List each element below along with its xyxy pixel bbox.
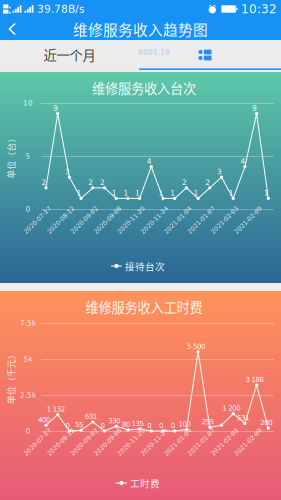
staticText: 0 bbox=[159, 421, 163, 430]
staticText: 1 bbox=[112, 189, 117, 197]
staticText: 80 bbox=[122, 420, 130, 428]
staticText: 2021-01-04 bbox=[160, 438, 196, 445]
staticText: 0 bbox=[25, 427, 30, 435]
staticText: 2021-02-03 bbox=[207, 438, 243, 445]
staticText: 0 bbox=[147, 421, 151, 430]
staticText: 0 bbox=[171, 421, 175, 430]
staticText: 1 bbox=[123, 189, 128, 197]
staticText: 2020-09-02 bbox=[66, 438, 102, 445]
staticText: 255 bbox=[202, 418, 214, 426]
staticText: 2 bbox=[100, 178, 105, 187]
staticText: 4 bbox=[147, 157, 152, 165]
staticText: 近一个月 bbox=[43, 45, 95, 64]
staticText: 2020-08-12 bbox=[43, 216, 79, 223]
staticText: 400 bbox=[38, 416, 50, 424]
staticText: 200 bbox=[260, 419, 272, 427]
staticText: 10 bbox=[23, 99, 33, 107]
staticText: 1 bbox=[135, 189, 140, 197]
staticText: 4 bbox=[240, 157, 245, 165]
staticText: 2021-01-04 bbox=[160, 216, 196, 223]
staticText: 单位（台） bbox=[0, 150, 33, 162]
staticText: 2020-11-20 bbox=[113, 216, 149, 223]
staticText: 1 bbox=[77, 189, 82, 197]
staticText: 531 bbox=[237, 414, 249, 422]
staticText: 2020-11-24 bbox=[136, 216, 172, 223]
staticText: 工时费 bbox=[130, 476, 160, 490]
staticText: 330 bbox=[108, 417, 120, 425]
staticText: 1 bbox=[229, 189, 234, 197]
staticText: 3 186 bbox=[246, 376, 264, 384]
staticText: 1 bbox=[158, 189, 163, 197]
button[interactable]: Switch to table view bbox=[189, 42, 220, 68]
staticText: 55 bbox=[75, 421, 83, 429]
staticText: 10:32 bbox=[241, 2, 277, 16]
staticText: 1 bbox=[194, 189, 199, 197]
staticText: 维修服务收入台次 bbox=[92, 78, 196, 97]
staticText: 2021-02-09 bbox=[230, 438, 266, 445]
staticText: 8001.16 bbox=[138, 48, 170, 56]
staticText: 2020-11-24 bbox=[136, 438, 172, 445]
staticText: 单位（千元） bbox=[0, 371, 38, 383]
button[interactable]: 8001.16 bbox=[132, 42, 176, 62]
button[interactable]: 近一个月 bbox=[30, 38, 108, 71]
staticText: 2021-01-07 bbox=[183, 438, 219, 445]
staticText: 1 bbox=[264, 189, 269, 197]
staticText: 9 bbox=[252, 104, 257, 112]
staticText: 2.5k bbox=[20, 391, 36, 399]
staticText: 3 bbox=[217, 167, 222, 176]
staticText: 2021-02-09 bbox=[230, 216, 266, 223]
staticText: 2021-02-03 bbox=[207, 216, 243, 223]
staticText: 2 bbox=[41, 178, 46, 187]
staticText: 2021-01-07 bbox=[183, 216, 219, 223]
staticText: 5k bbox=[23, 355, 32, 363]
staticText: 1 132 bbox=[47, 405, 65, 413]
staticText: 2020-09-02 bbox=[66, 216, 102, 223]
staticText: 2020-11-20 bbox=[113, 438, 149, 445]
staticText: 接待台次 bbox=[125, 259, 165, 273]
staticText: 1 bbox=[170, 189, 175, 197]
staticText: 5 bbox=[25, 152, 30, 160]
staticText: 维修服务收入工时费 bbox=[85, 297, 202, 316]
staticText: 135 bbox=[132, 419, 144, 428]
staticText: 631 bbox=[85, 412, 97, 420]
staticText: 0 bbox=[65, 421, 69, 430]
staticText: 7.5k bbox=[20, 319, 36, 327]
staticText: 0 bbox=[25, 205, 30, 213]
staticText: 维修服务收入趋势图 bbox=[73, 18, 208, 40]
staticText: 2 bbox=[182, 178, 187, 187]
staticText: 2020-07-17 bbox=[19, 216, 55, 223]
staticText: 2 bbox=[205, 178, 210, 187]
staticText: 39.78B/s bbox=[37, 3, 85, 15]
staticText: 5 500 bbox=[187, 342, 205, 350]
staticText: 2020-07-17 bbox=[19, 438, 55, 445]
staticText: 0 bbox=[100, 421, 104, 430]
staticText: 3 bbox=[65, 167, 70, 176]
staticText: 100 bbox=[178, 420, 190, 428]
button[interactable]: Back bbox=[0, 19, 26, 39]
staticText: 9 bbox=[53, 104, 58, 112]
staticText: 2 bbox=[88, 178, 93, 187]
staticText: 1 200 bbox=[222, 404, 240, 412]
staticText: 2020-09-08 bbox=[90, 216, 126, 223]
staticText: 2020-09-08 bbox=[90, 438, 126, 445]
staticText: 2020-08-12 bbox=[43, 438, 79, 445]
